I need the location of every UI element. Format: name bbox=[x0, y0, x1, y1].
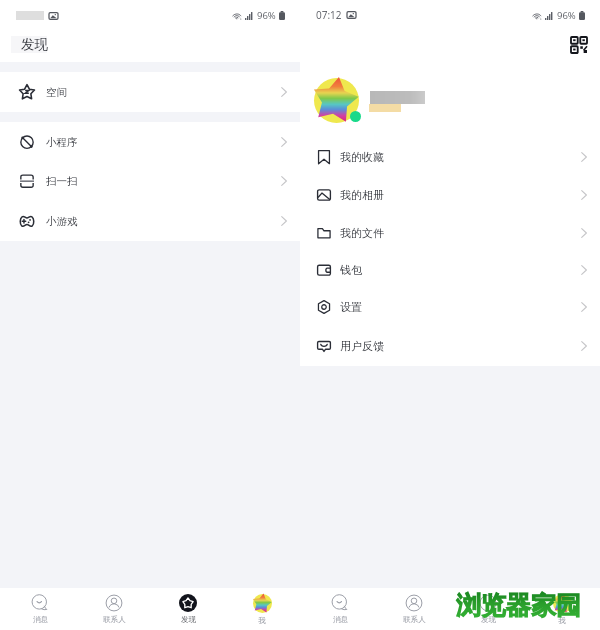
button[interactable]: 扫一扫 bbox=[0, 161, 300, 201]
staticText: 用户反馈 bbox=[340, 339, 384, 353]
staticText: 发现 bbox=[181, 615, 196, 624]
staticText: 小游戏 bbox=[46, 215, 78, 228]
button[interactable]: 我 bbox=[225, 588, 299, 630]
staticText: 我的收藏 bbox=[340, 150, 384, 164]
button[interactable]: 小游戏 bbox=[0, 201, 300, 241]
staticText: 联系人 bbox=[103, 615, 126, 624]
staticText: 我的文件 bbox=[340, 226, 384, 240]
staticText: 07:12 bbox=[316, 8, 342, 22]
button[interactable]: 小程序 bbox=[0, 122, 300, 162]
staticText: 我的相册 bbox=[340, 188, 384, 202]
button[interactable]: 我的相册 bbox=[300, 176, 600, 214]
button[interactable]: 发现 bbox=[151, 588, 225, 630]
staticText: 我 bbox=[258, 616, 266, 625]
staticText: 96% bbox=[257, 9, 276, 22]
button[interactable]: Scan QR code bbox=[564, 30, 594, 60]
staticText: 扫一扫 bbox=[46, 175, 78, 188]
button[interactable]: 消息 bbox=[3, 588, 77, 630]
button[interactable]: 联系人 bbox=[377, 588, 451, 630]
staticText: 钱包 bbox=[340, 263, 362, 277]
staticText: 设置 bbox=[340, 300, 362, 314]
staticText: 96% bbox=[557, 9, 576, 22]
button[interactable]: 用户反馈 bbox=[300, 327, 600, 365]
staticText: 消息 bbox=[333, 615, 348, 624]
staticText: 我 bbox=[558, 616, 566, 625]
button[interactable]: 消息 bbox=[303, 588, 377, 630]
button[interactable]: 发现 bbox=[451, 588, 525, 630]
staticText: 消息 bbox=[33, 615, 48, 624]
button[interactable]: 设置 bbox=[300, 288, 600, 326]
staticText: 发现 bbox=[481, 615, 496, 624]
button[interactable]: 空间 bbox=[0, 72, 300, 112]
staticText: 小程序 bbox=[46, 136, 78, 149]
button[interactable] bbox=[300, 62, 600, 130]
button[interactable]: 我的文件 bbox=[300, 214, 600, 252]
staticText: 空间 bbox=[46, 86, 67, 99]
button[interactable]: 我的收藏 bbox=[300, 138, 600, 176]
staticText: 发现 bbox=[21, 36, 48, 53]
button[interactable]: 钱包 bbox=[300, 251, 600, 289]
button[interactable]: 联系人 bbox=[77, 588, 151, 630]
staticText: 联系人 bbox=[403, 615, 426, 624]
staticText: 浏览器家园 bbox=[456, 590, 581, 621]
button[interactable]: 我 bbox=[525, 588, 599, 630]
